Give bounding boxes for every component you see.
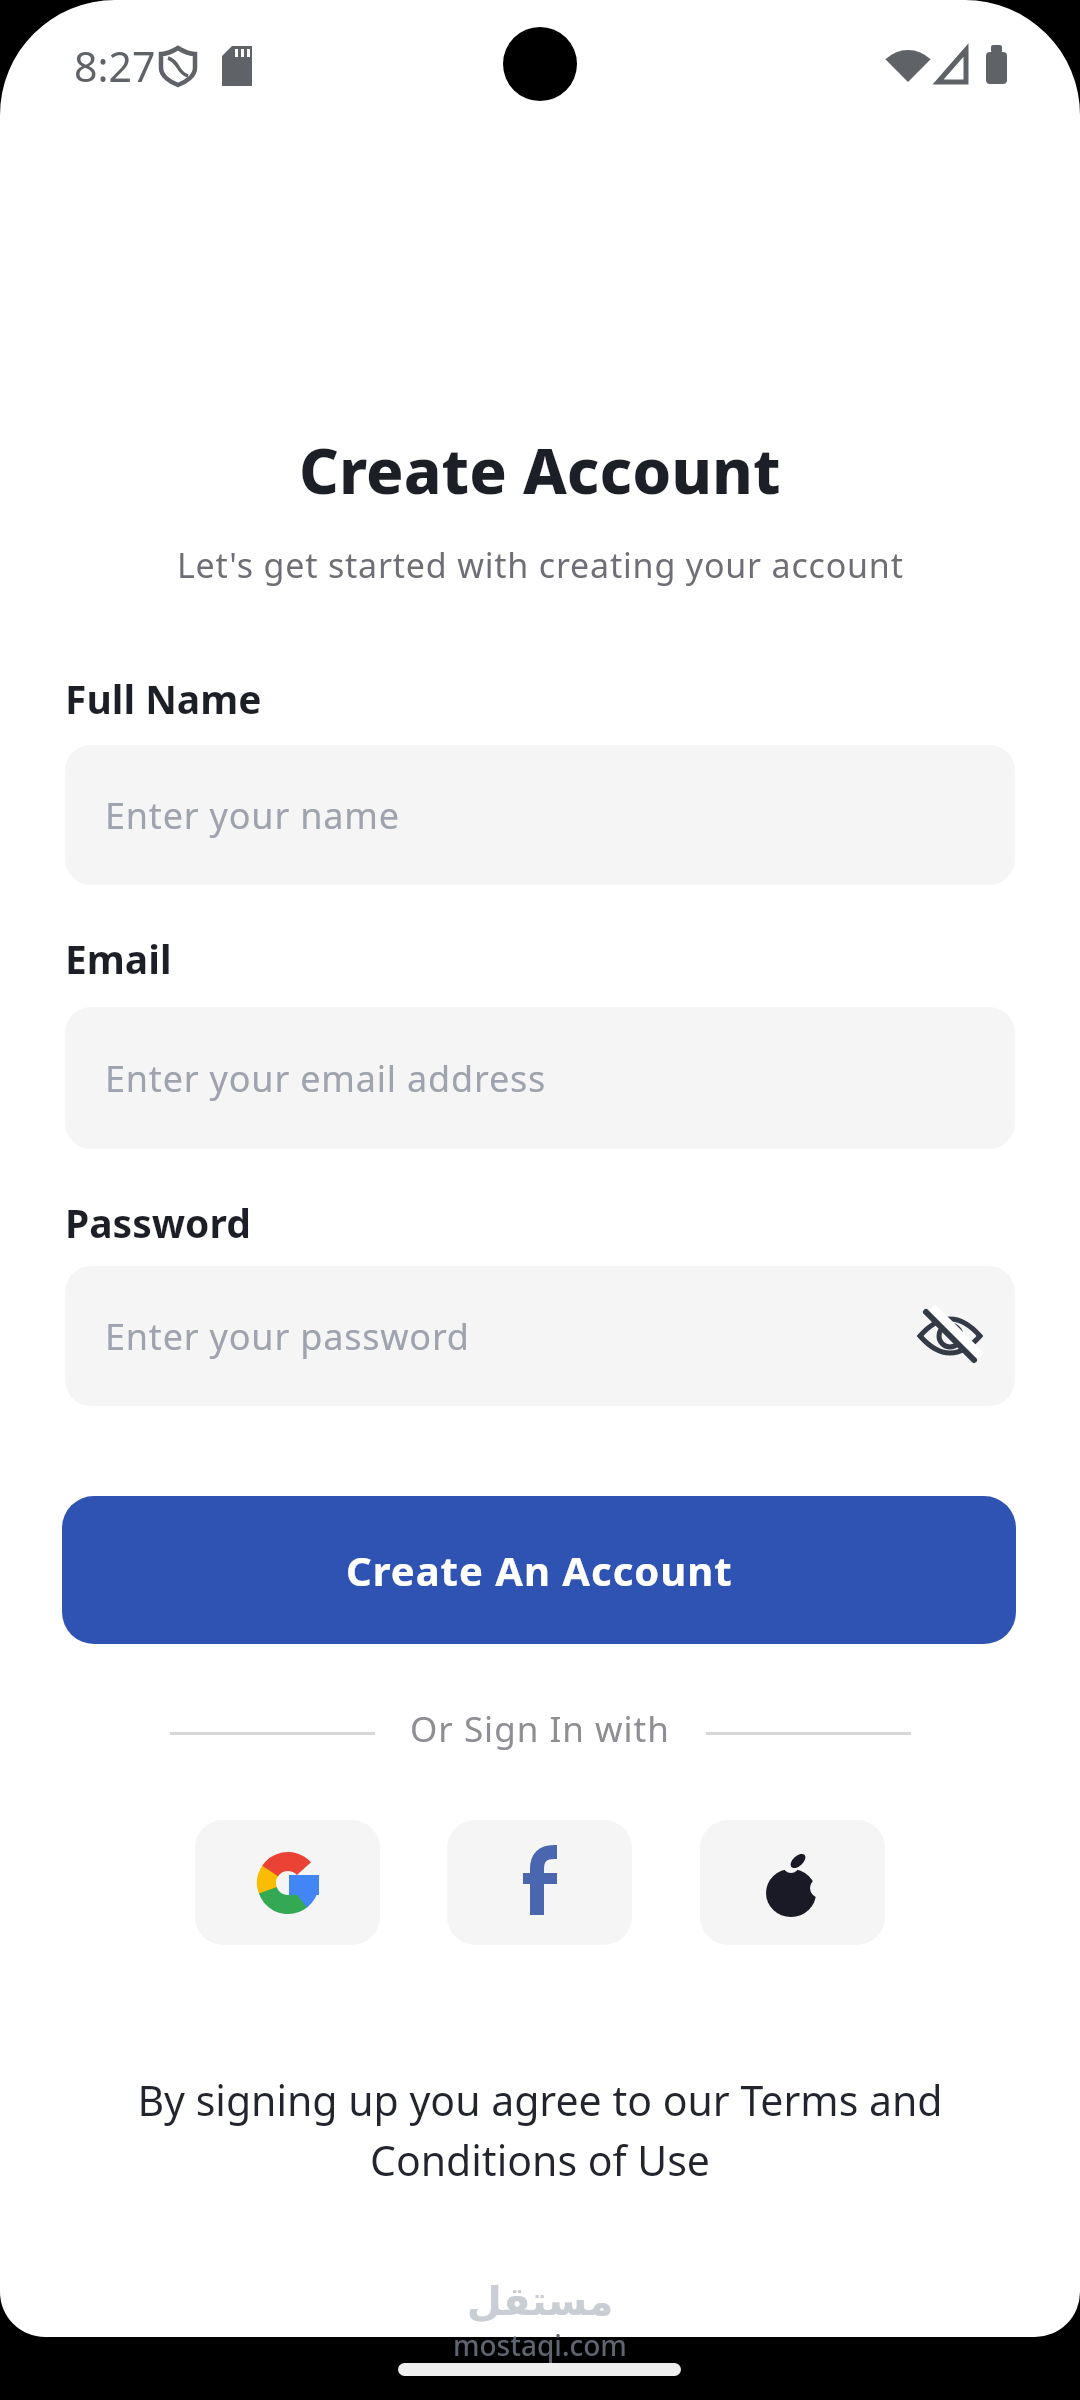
staticText: مستقل	[467, 2278, 614, 2325]
staticText: Create Account	[299, 428, 781, 512]
button[interactable]	[447, 1820, 632, 1945]
staticText: 8:27	[74, 38, 156, 94]
staticText: By signing up you agree to our Terms and…	[137, 2072, 943, 2188]
staticText: Let's get started with creating your acc…	[177, 542, 904, 588]
staticText: Enter your name	[105, 791, 400, 840]
button[interactable]: Enter your password	[65, 1266, 1015, 1406]
staticText: Enter your password	[105, 1312, 470, 1361]
button[interactable]: Enter your name	[65, 745, 1015, 885]
staticText: Create An Account	[346, 1543, 733, 1597]
button[interactable]: Enter your email address	[65, 1007, 1015, 1149]
staticText: Password	[65, 1196, 251, 1249]
staticText: Enter your email address	[105, 1054, 547, 1103]
staticText: Full Name	[65, 672, 262, 725]
staticText: mostaqi.com	[453, 2326, 627, 2364]
staticText: Email	[65, 932, 172, 985]
button[interactable]	[195, 1820, 380, 1945]
button[interactable]: Create An Account	[62, 1496, 1016, 1644]
button[interactable]	[700, 1820, 885, 1945]
staticText: Or Sign In with	[410, 1705, 670, 1753]
